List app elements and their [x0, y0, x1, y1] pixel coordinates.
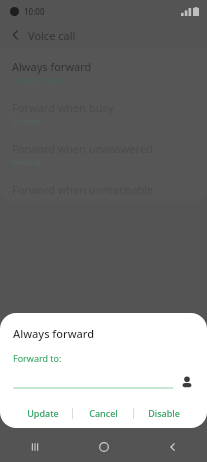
- staticText: Forward when unanswered: [12, 141, 153, 156]
- staticText: Forward when unreachable: [12, 182, 154, 195]
- button[interactable]: Update: [13, 402, 72, 424]
- staticText: Voice call: [28, 28, 76, 43]
- button[interactable]: Back: [138, 432, 207, 462]
- button[interactable]: Always forward: [0, 52, 207, 93]
- staticText: Forward when busy: [12, 100, 114, 115]
- button[interactable]: Select contact: [180, 375, 194, 389]
- button[interactable]: Cancel: [73, 402, 133, 424]
- staticText: Update: [27, 407, 59, 419]
- button[interactable]: [13, 375, 173, 389]
- staticText: Forward calls to: [12, 76, 64, 86]
- staticText: Disable: [148, 407, 180, 419]
- staticText: Always forward: [13, 326, 95, 341]
- staticText: Disabled: [12, 117, 41, 127]
- button[interactable]: Back: [8, 27, 24, 43]
- staticText: Always forward: [12, 59, 92, 74]
- button[interactable]: Home: [69, 432, 138, 462]
- button[interactable]: Disable: [134, 402, 194, 424]
- staticText: Cancel: [89, 407, 118, 419]
- staticText: Disabled: [12, 158, 41, 168]
- button[interactable]: Recents: [0, 432, 69, 462]
- staticText: 10:00: [24, 6, 45, 17]
- staticText: Forward to:: [13, 352, 62, 364]
